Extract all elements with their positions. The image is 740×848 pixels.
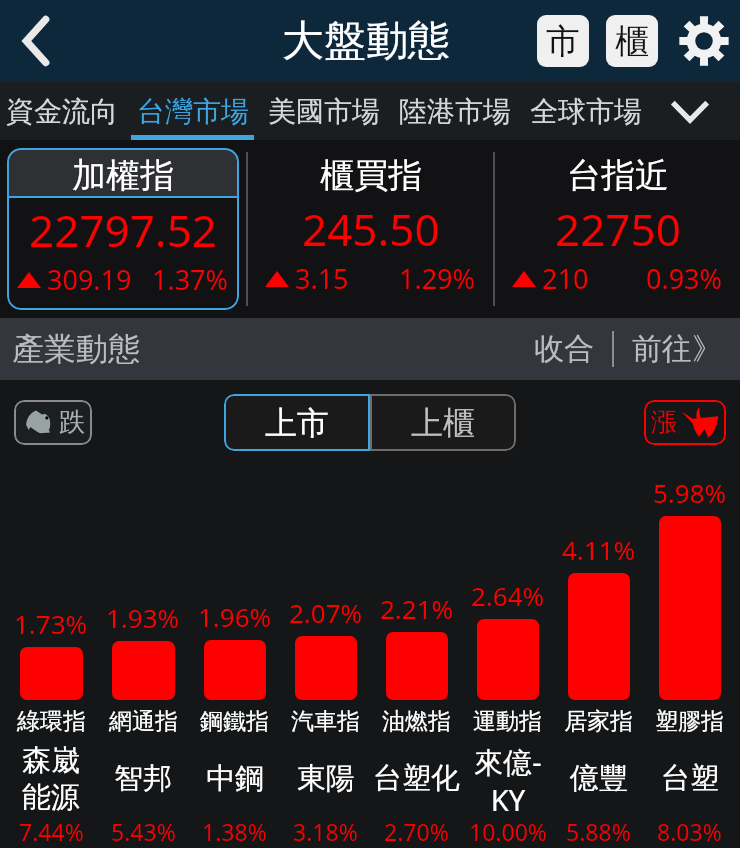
button[interactable]: 收合 [524,318,604,380]
button[interactable]: 5.98% [644,465,735,848]
staticText: 陸港市場 [399,94,511,129]
staticText: 台指近 [567,154,669,197]
button[interactable]: 2.64% [462,465,553,848]
button[interactable]: 櫃 [606,15,658,67]
staticText: 智邦 [114,760,172,797]
staticText: 10.00% [469,816,547,847]
staticText: 居家指 [564,707,633,736]
button[interactable]: Back [0,6,70,76]
staticText: 市 [546,20,580,63]
staticText: 前往》 [632,330,722,368]
staticText: 上市 [265,403,329,443]
staticText: 產業動態 [12,329,140,369]
staticText: 塑膠指 [655,707,724,736]
staticText: 台塑 [661,760,719,797]
button[interactable]: 加權指 [7,148,239,310]
staticText: 櫃買指 [320,154,422,197]
staticText: 8.03% [657,816,722,847]
staticText: 7.44% [19,816,84,847]
staticText: 1.73% [14,606,88,641]
staticText: 綠環指 [17,707,86,736]
staticText: 鋼鐵指 [200,707,269,736]
staticText: 309.19 [47,261,132,298]
staticText: 櫃 [615,20,649,63]
staticText: 3.18% [293,816,358,847]
staticText: 2.64% [471,578,545,613]
button[interactable]: 台指近 [502,148,733,310]
button[interactable]: 1.93% [97,465,189,848]
staticText: 台塑化 [373,760,460,797]
button[interactable]: Expand [662,83,718,139]
button[interactable]: 陸港市場 [389,82,520,140]
button[interactable]: 2.07% [280,465,371,848]
button[interactable]: 漲 [644,400,726,445]
staticText: 22797.52 [29,200,217,260]
staticText: 運動指 [473,707,542,736]
staticText: 網通指 [109,707,178,736]
staticText: 2.70% [384,816,449,847]
staticText: 1.96% [198,599,272,634]
staticText: 4.11% [562,532,636,567]
staticText: 1.37% [152,261,229,298]
staticText: 3.15 [295,260,349,297]
staticText: 億豐 [570,760,628,797]
staticText: 跌 [59,406,85,439]
staticText: 全球市場 [530,94,642,129]
staticText: 1.93% [106,600,180,635]
staticText: 5.88% [566,816,631,847]
staticText: 22750 [555,199,681,259]
staticText: 森崴 能源 [22,742,80,815]
staticText: 0.93% [646,260,723,297]
button[interactable]: 4.11% [553,465,644,848]
staticText: 上櫃 [411,403,475,443]
staticText: 收合 [534,330,594,368]
button[interactable]: 市 [537,15,589,67]
button[interactable]: 1.73% [5,465,97,848]
button[interactable]: 台灣市場 [127,82,258,140]
staticText: 來億- KY [474,742,542,815]
staticText: 2.07% [289,595,363,630]
staticText: 漲 [651,406,677,439]
button[interactable]: 資金流向 [0,82,127,140]
button[interactable]: 上櫃 [370,394,516,451]
staticText: 5.43% [111,816,176,847]
button[interactable]: 櫃買指 [255,148,486,310]
button[interactable]: 美國市場 [258,82,389,140]
staticText: 1.29% [399,260,476,297]
staticText: 5.98% [653,475,727,510]
button[interactable]: 跌 [14,400,92,445]
staticText: 210 [542,260,589,297]
button[interactable]: 上市 [224,394,370,451]
staticText: 2.21% [380,591,454,626]
staticText: 油燃指 [382,707,451,736]
staticText: 台灣市場 [137,94,249,129]
staticText: 東陽 [297,760,355,797]
button[interactable]: 前往》 [622,318,732,380]
staticText: 汽車指 [291,707,360,736]
staticText: 加權指 [72,154,174,197]
staticText: 1.38% [202,816,267,847]
button[interactable]: 全球市場 [520,82,651,140]
staticText: 資金流向 [6,94,118,129]
staticText: 245.50 [302,199,440,259]
staticText: 大盤動態 [282,15,450,68]
staticText: 中鋼 [206,760,264,797]
button[interactable]: 2.21% [371,465,462,848]
staticText: 美國市場 [268,94,380,129]
button[interactable]: Settings [678,15,730,67]
button[interactable]: 1.96% [189,465,280,848]
